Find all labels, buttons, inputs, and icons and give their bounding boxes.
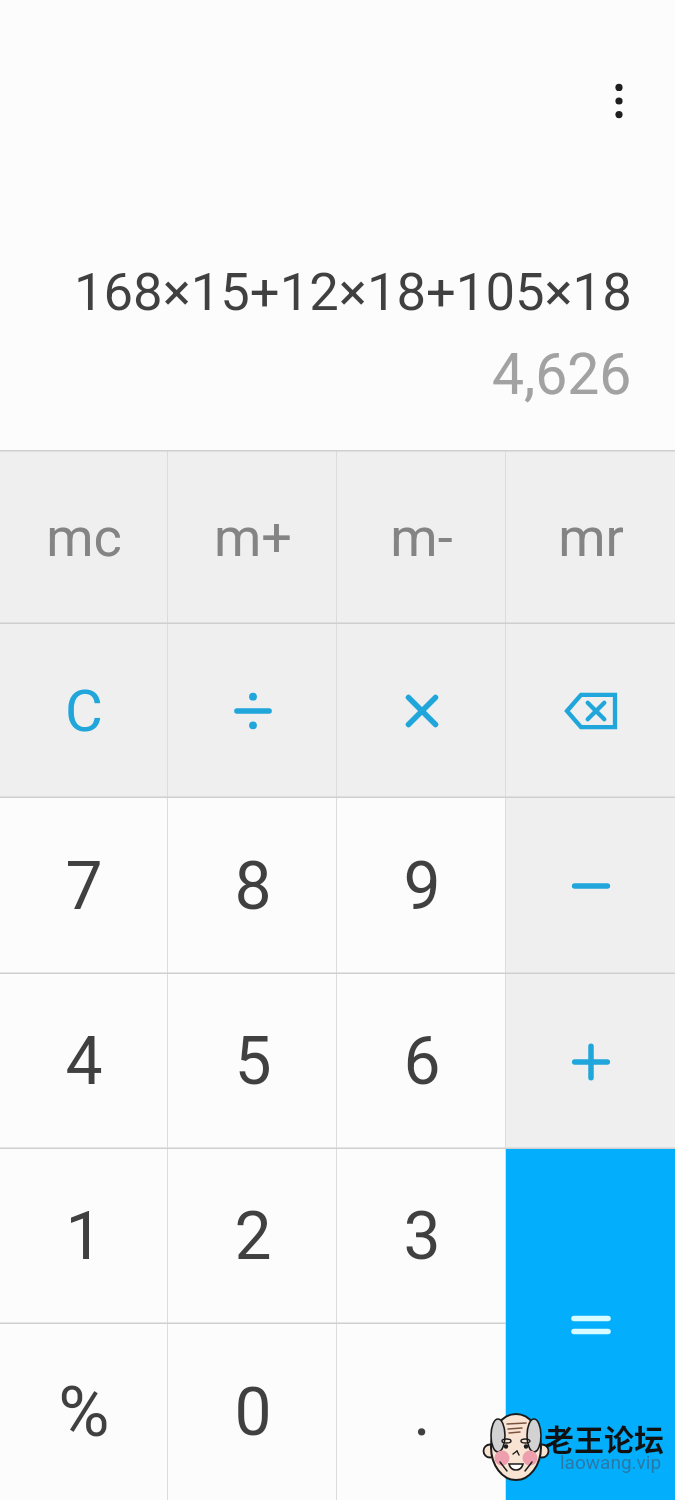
button[interactable]: 5 — [168, 974, 337, 1149]
staticText: 2 — [234, 1198, 272, 1275]
staticText: 7 — [65, 848, 103, 925]
staticText: . — [413, 1374, 431, 1451]
button[interactable]: % — [0, 1324, 168, 1500]
button[interactable]: 8 — [168, 798, 337, 974]
staticText: 老王论坛 — [544, 1416, 664, 1459]
button[interactable]: Multiply — [337, 624, 506, 798]
staticText: 168×15+12×18+105×18 — [74, 261, 632, 323]
button[interactable]: C — [0, 624, 168, 798]
button[interactable]: Divide — [168, 624, 337, 798]
button[interactable]: 9 — [337, 798, 506, 974]
button[interactable]: . — [337, 1324, 506, 1500]
button[interactable]: 1 — [0, 1149, 168, 1324]
button[interactable]: Minus — [506, 798, 675, 974]
button[interactable]: 3 — [337, 1149, 506, 1324]
staticText: 1 — [65, 1198, 103, 1275]
button[interactable]: 7 — [0, 798, 168, 974]
button[interactable]: 6 — [337, 974, 506, 1149]
staticText: 0 — [234, 1374, 272, 1451]
staticText: m- — [390, 506, 453, 569]
staticText: C — [65, 677, 103, 745]
staticText: m+ — [214, 506, 292, 569]
button[interactable]: Plus — [506, 974, 675, 1149]
button[interactable]: 4 — [0, 974, 168, 1149]
staticText: 4,626 — [492, 341, 632, 408]
button[interactable]: m- — [337, 450, 506, 624]
staticText: 9 — [403, 848, 441, 925]
staticText: 3 — [403, 1198, 441, 1275]
button[interactable]: mr — [506, 450, 675, 624]
staticText: 5 — [234, 1023, 272, 1100]
button[interactable]: More options — [591, 73, 647, 129]
staticText: mr — [558, 506, 624, 569]
staticText: 8 — [234, 848, 272, 925]
staticText: mc — [46, 506, 122, 569]
button[interactable]: Backspace — [506, 624, 675, 798]
staticText: 4 — [65, 1023, 103, 1100]
button[interactable]: m+ — [168, 450, 337, 624]
staticText: laowang.vip — [560, 1451, 662, 1473]
staticText: % — [58, 1371, 110, 1453]
button[interactable]: Equals — [506, 1149, 675, 1500]
staticText: 6 — [403, 1023, 441, 1100]
button[interactable]: 2 — [168, 1149, 337, 1324]
button[interactable]: mc — [0, 450, 168, 624]
button[interactable]: 0 — [168, 1324, 337, 1500]
